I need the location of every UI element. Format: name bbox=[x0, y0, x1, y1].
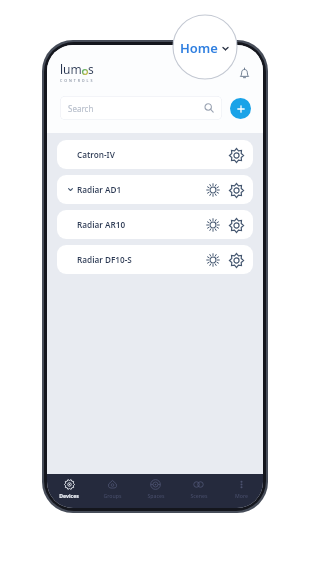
button[interactable]: Devices bbox=[47, 474, 91, 508]
button[interactable]: Settings bbox=[227, 251, 245, 269]
button[interactable]: Brightness bbox=[204, 216, 222, 234]
button[interactable]: Notifications bbox=[233, 62, 255, 84]
staticText: Radiar DF10-S bbox=[77, 254, 132, 265]
button[interactable]: Add device bbox=[230, 98, 251, 119]
button[interactable]: lum bbox=[60, 61, 94, 83]
button[interactable]: More bbox=[220, 474, 263, 508]
staticText: s bbox=[88, 61, 94, 77]
button[interactable]: Radiar DF10-S bbox=[57, 245, 253, 274]
staticText: Catron-IV bbox=[77, 149, 115, 160]
staticText: More bbox=[235, 492, 248, 499]
staticText: Home bbox=[180, 39, 218, 57]
staticText: Groups bbox=[103, 492, 122, 499]
staticText: Devices bbox=[59, 492, 79, 499]
button[interactable]: Spaces bbox=[134, 474, 177, 508]
button[interactable]: Search bbox=[60, 96, 222, 120]
button[interactable]: Settings bbox=[227, 181, 245, 199]
button[interactable]: Catron-IV bbox=[57, 140, 253, 169]
button[interactable]: Settings bbox=[227, 216, 245, 234]
button[interactable]: Home bbox=[180, 39, 230, 57]
staticText: C O N T R O L S bbox=[60, 78, 93, 83]
button[interactable]: Brightness bbox=[204, 251, 222, 269]
button[interactable]: Radiar AR10 bbox=[57, 210, 253, 239]
button[interactable]: Brightness bbox=[204, 181, 222, 199]
staticText: Scenes bbox=[190, 492, 208, 499]
staticText: Radiar AD1 bbox=[77, 184, 122, 195]
staticText: lum bbox=[60, 61, 82, 77]
staticText: Spaces bbox=[147, 492, 165, 499]
staticText: Search bbox=[68, 103, 94, 114]
button[interactable]: Settings bbox=[227, 146, 245, 164]
button[interactable]: Radiar AD1 bbox=[57, 175, 253, 204]
button[interactable]: Groups bbox=[91, 474, 134, 508]
staticText: Radiar AR10 bbox=[77, 219, 126, 230]
button[interactable]: Scenes bbox=[177, 474, 220, 508]
